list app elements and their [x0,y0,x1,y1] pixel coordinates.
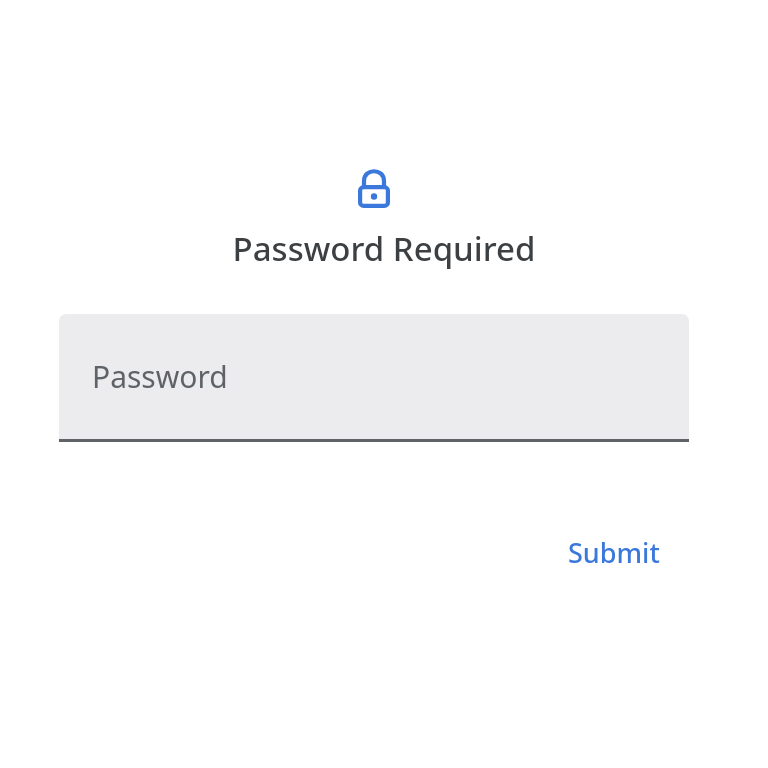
staticText: Password Required [0,226,768,271]
staticText: Submit [568,534,660,571]
button[interactable]: Password [59,314,689,442]
button[interactable]: Submit [548,522,680,583]
staticText: Password [92,356,228,397]
other: Locked [356,168,392,210]
